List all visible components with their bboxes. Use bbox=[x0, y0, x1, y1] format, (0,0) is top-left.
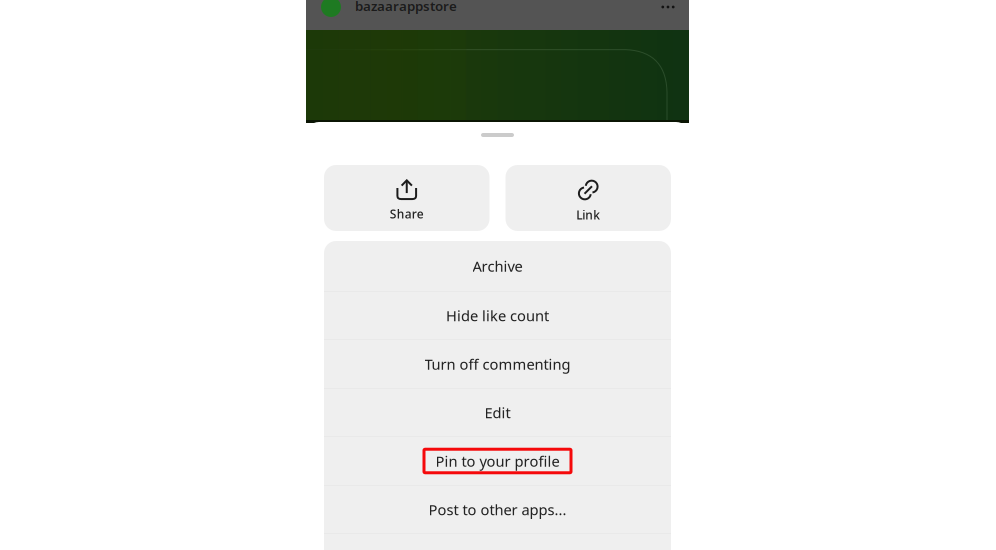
staticText: Hide like count bbox=[446, 306, 549, 325]
staticText: Archive bbox=[472, 256, 522, 276]
staticText: Link bbox=[576, 207, 600, 223]
button[interactable]: Archive bbox=[324, 241, 671, 292]
button[interactable]: Pin to your profile bbox=[324, 437, 671, 486]
staticText: Turn off commenting bbox=[424, 354, 570, 374]
staticText: bazaarappstore bbox=[355, 0, 457, 15]
button[interactable]: Edit bbox=[324, 389, 671, 437]
button[interactable]: More options bbox=[653, 0, 683, 19]
button[interactable]: Turn off commenting bbox=[324, 340, 671, 389]
staticText: Edit bbox=[484, 403, 510, 422]
button[interactable]: Link bbox=[505, 165, 671, 231]
staticText: Pin to your profile bbox=[435, 451, 559, 471]
button[interactable]: Post to other apps... bbox=[324, 486, 671, 534]
button[interactable]: Hide like count bbox=[324, 292, 671, 340]
staticText: Post to other apps... bbox=[428, 500, 566, 519]
staticText: Share bbox=[390, 206, 424, 222]
button[interactable]: Share bbox=[324, 165, 489, 231]
